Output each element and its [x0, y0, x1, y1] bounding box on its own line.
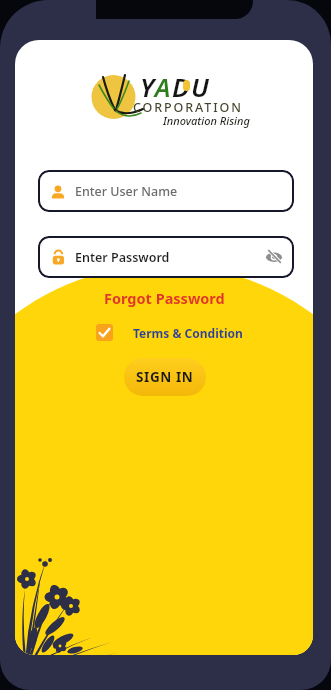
staticText: Enter Password: [75, 249, 170, 266]
button[interactable]: Enter Password: [38, 236, 294, 278]
staticText: Enter User Name: [75, 183, 178, 200]
staticText: SIGN IN: [136, 368, 194, 386]
button[interactable]: Terms & Condition: [96, 324, 243, 341]
staticText: Forgot Password: [104, 288, 225, 308]
button[interactable]: SIGN IN: [124, 358, 206, 396]
staticText: CORPORATION: [133, 99, 243, 116]
staticText: Innovation Rising: [163, 113, 250, 128]
staticText: YADU: [140, 69, 211, 104]
button[interactable]: [265, 248, 283, 266]
staticText: Terms & Condition: [133, 325, 243, 341]
button[interactable]: Enter User Name: [38, 170, 294, 212]
button[interactable]: Forgot Password: [104, 288, 225, 308]
